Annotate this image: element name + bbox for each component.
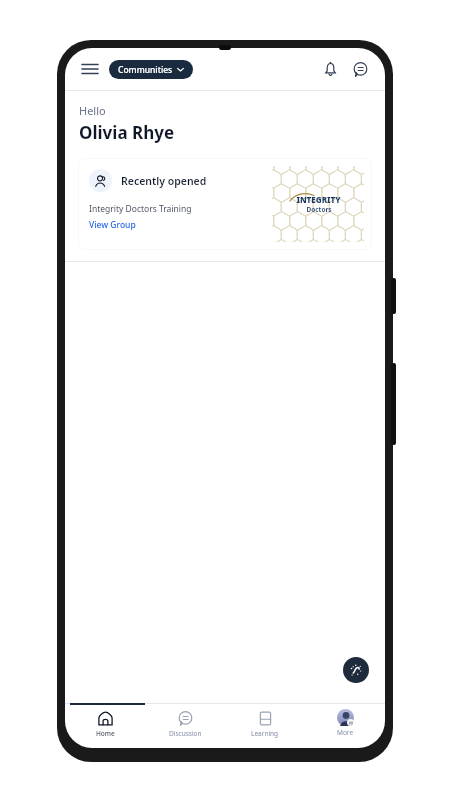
button[interactable]: Communities [109,60,193,79]
staticText: Integrity Doctors Training [89,203,192,215]
button[interactable]: Discussion [145,703,225,748]
button[interactable]: Messages [347,56,373,82]
staticText: Olivia Rhye [79,121,175,144]
button[interactable]: View Group [89,219,136,231]
button[interactable]: Learning [225,703,305,748]
staticText: INTEGRITY [296,194,341,205]
button[interactable]: Open navigation menu [77,56,103,82]
staticText: More [337,728,354,737]
staticText: Doctors [306,205,332,214]
button[interactable]: More [305,703,385,748]
button[interactable]: Home [65,703,145,748]
button[interactable]: Notifications [317,56,343,82]
staticText: Hello [79,103,106,118]
staticText: Home [96,729,115,738]
staticText: Recently opened [121,174,207,188]
button[interactable]: AI assistant [343,657,369,683]
staticText: Communities [118,64,173,76]
button[interactable]: Recently opened [78,158,372,250]
staticText: Learning [251,729,279,738]
staticText: Discussion [169,729,202,738]
staticText: View Group [89,219,136,231]
